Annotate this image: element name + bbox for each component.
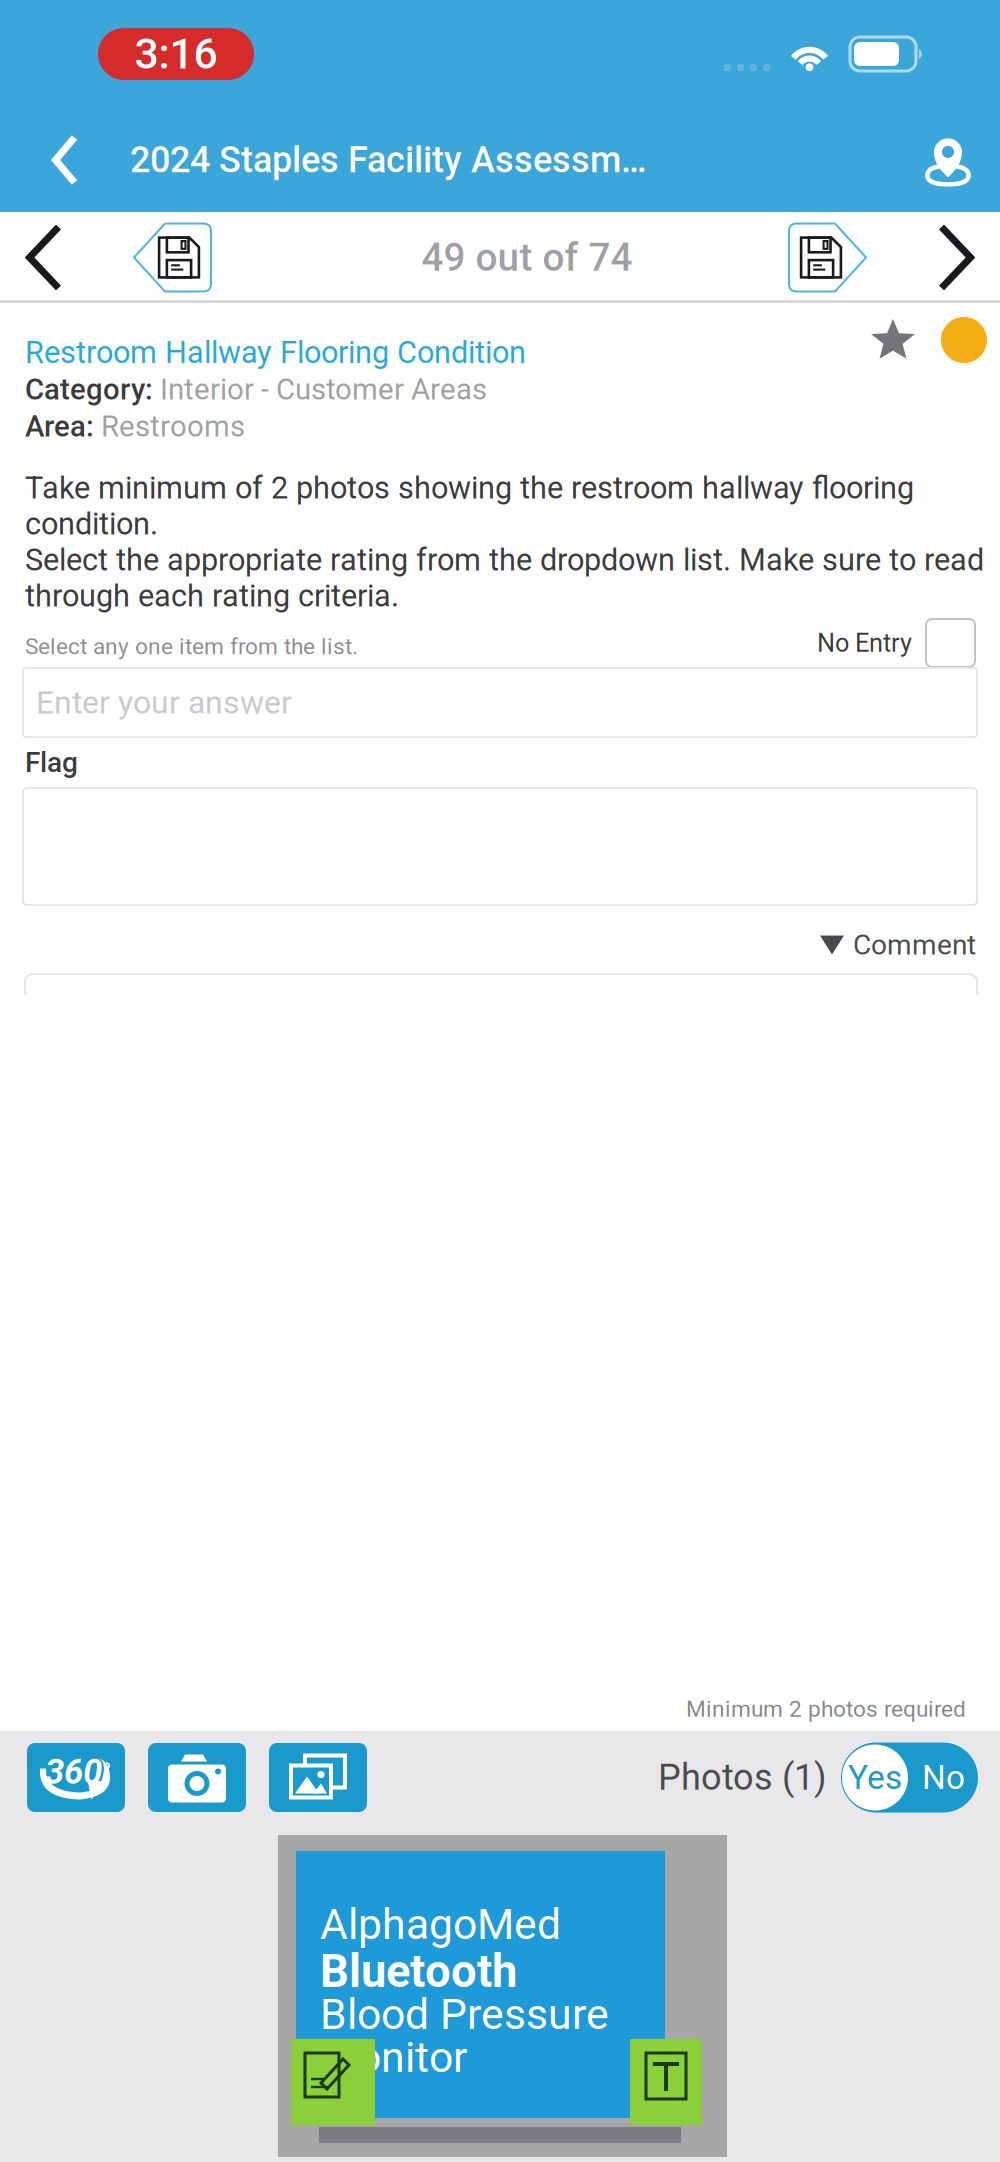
button[interactable]: Comment <box>820 921 1000 969</box>
staticText: Category: <box>25 372 160 407</box>
staticText: 360 <box>45 1751 102 1792</box>
button[interactable]: Photos required, Yes selected <box>841 1742 978 1812</box>
staticText: AlphagoMed <box>320 1899 561 1949</box>
button[interactable]: Back <box>0 108 130 212</box>
staticText: Monitor <box>320 2032 467 2082</box>
staticText: No Entry <box>817 628 912 658</box>
staticText: Take minimum of 2 photos showing the res… <box>25 470 914 506</box>
button[interactable]: Save and go to previous <box>131 221 213 293</box>
staticText: 3:16 <box>134 29 217 79</box>
staticText: through each rating criteria. <box>25 578 399 614</box>
staticText: Minimum 2 photos required <box>686 1696 966 1722</box>
staticText: Restroom Hallway Flooring Condition <box>25 334 526 370</box>
button[interactable]: Take 360 photo <box>27 1743 125 1812</box>
button[interactable]: Save and go to next <box>787 221 869 293</box>
button[interactable]: Next question <box>912 212 1000 303</box>
button[interactable]: Add text to photo <box>630 2039 702 2125</box>
staticText: Bluetooth <box>320 1945 517 1998</box>
button[interactable]: Annotate photo <box>291 2039 375 2125</box>
staticText: No <box>922 1758 965 1797</box>
button[interactable]: Mark as important <box>870 317 916 363</box>
button[interactable]: Enter your answer <box>23 668 977 737</box>
staticText: condition. <box>25 506 158 542</box>
staticText: Comment <box>853 929 976 961</box>
staticText: ° <box>102 1758 111 1786</box>
staticText: 49 out of 74 <box>421 235 632 280</box>
staticText: Restrooms <box>101 409 245 444</box>
button[interactable]: Take photo <box>148 1743 246 1812</box>
button[interactable]: Location <box>896 108 1000 212</box>
staticText: Interior - Customer Areas <box>160 372 487 407</box>
button[interactable]: Flag selection <box>23 788 977 905</box>
staticText: Select the appropriate rating from the d… <box>25 542 984 578</box>
staticText: 2024 Staples Facility Assessm… <box>130 139 646 181</box>
staticText: Flag <box>25 746 78 779</box>
staticText: Yes <box>848 1758 902 1797</box>
staticText: Select any one item from the list. <box>25 633 358 660</box>
button[interactable]: No Entry checkbox <box>926 619 975 667</box>
staticText: Area: <box>25 409 101 444</box>
button[interactable]: Previous question <box>0 212 88 303</box>
button[interactable]: Question status <box>941 317 987 363</box>
staticText: Blood Pressure <box>320 1989 609 2039</box>
staticText: Enter your answer <box>36 684 292 721</box>
staticText: Photos (1) <box>658 1756 827 1799</box>
button[interactable]: Choose from library <box>269 1743 367 1812</box>
